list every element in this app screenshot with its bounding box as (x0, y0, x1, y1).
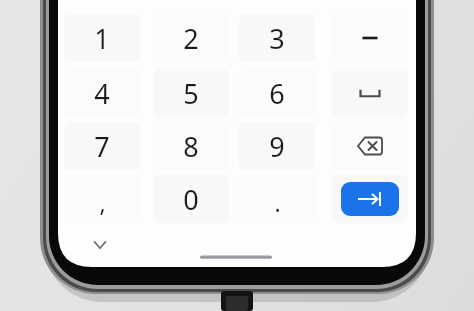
button[interactable]: Backspace (340, 121, 400, 171)
staticText: 8 (183, 128, 199, 165)
button[interactable]: 3 (239, 13, 315, 63)
staticText: 3 (269, 20, 285, 57)
button[interactable]: 7 (64, 121, 140, 171)
staticText: 1 (94, 20, 110, 57)
staticText: 2 (183, 20, 199, 57)
staticText: . (274, 187, 281, 218)
button[interactable]: Enter (341, 182, 399, 216)
staticText: , (99, 187, 106, 218)
button[interactable]: 1 (64, 13, 140, 63)
button[interactable]: . (239, 177, 315, 227)
button[interactable]: , (64, 177, 140, 227)
button[interactable]: 9 (239, 121, 315, 171)
button[interactable]: 2 (153, 13, 229, 63)
button[interactable]: 8 (153, 121, 229, 171)
staticText: 0 (183, 181, 199, 218)
staticText: 9 (269, 128, 285, 165)
staticText: 7 (94, 128, 110, 165)
button[interactable]: Minus (340, 13, 400, 63)
button[interactable]: 4 (64, 68, 140, 118)
button[interactable]: Hide keyboard (80, 231, 120, 259)
button[interactable]: Space (340, 68, 400, 118)
button[interactable]: 6 (239, 68, 315, 118)
staticText: 4 (94, 75, 110, 112)
staticText: 6 (269, 75, 285, 112)
staticText: 5 (183, 75, 199, 112)
button[interactable]: 5 (153, 68, 229, 118)
button[interactable]: 0 (153, 174, 229, 224)
